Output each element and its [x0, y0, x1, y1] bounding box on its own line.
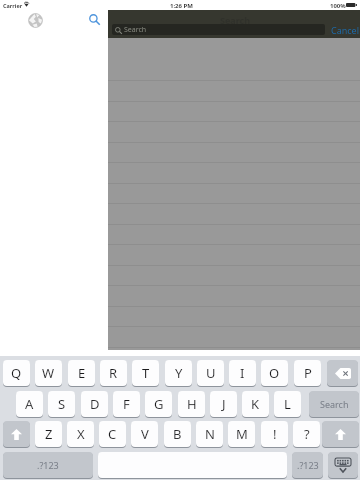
staticText: Search [320, 398, 349, 410]
staticText: W [42, 364, 55, 382]
button[interactable]: N [196, 421, 223, 447]
staticText: S [58, 395, 66, 413]
button[interactable]: U [197, 360, 224, 386]
staticText: C [108, 425, 117, 443]
staticText: Z [45, 425, 53, 443]
staticText: ! [273, 425, 277, 443]
button[interactable]: Hide keyboard [328, 452, 358, 478]
button[interactable]: Search [112, 24, 325, 35]
staticText: D [90, 395, 100, 413]
button[interactable]: B [164, 421, 191, 447]
button[interactable]: R [100, 360, 127, 386]
staticText: V [141, 425, 149, 443]
button[interactable]: I [229, 360, 256, 386]
staticText: P [304, 364, 312, 382]
staticText: K [251, 395, 260, 413]
button[interactable]: T [132, 360, 159, 386]
button[interactable]: H [178, 391, 205, 417]
staticText: J [222, 395, 226, 413]
staticText: E [78, 364, 86, 382]
staticText: .?123 [297, 459, 319, 471]
staticText: .?123 [37, 459, 59, 471]
button[interactable]: M [228, 421, 255, 447]
button[interactable]: Numbers [3, 452, 93, 478]
staticText: U [206, 364, 216, 382]
button[interactable]: A [16, 391, 43, 417]
staticText: F [123, 395, 130, 413]
staticText: Y [175, 364, 183, 382]
button[interactable]: Search [89, 14, 100, 25]
button[interactable]: K [242, 391, 269, 417]
button[interactable]: Shift [322, 421, 359, 447]
staticText: A [25, 395, 34, 413]
staticText: I [240, 364, 245, 382]
staticText: Carrier [3, 2, 23, 9]
button[interactable]: X [67, 421, 94, 447]
staticText: ? [304, 425, 310, 443]
button[interactable]: Y [165, 360, 192, 386]
staticText: T [142, 364, 150, 382]
staticText: B [173, 425, 182, 443]
button[interactable]: S [48, 391, 75, 417]
staticText: Search [124, 25, 147, 35]
staticText: H [187, 395, 197, 413]
button[interactable]: Q [3, 360, 30, 386]
button[interactable]: P [294, 360, 321, 386]
button[interactable]: G [145, 391, 172, 417]
staticText: Q [11, 364, 22, 382]
staticText: G [154, 395, 164, 413]
staticText: M [236, 425, 248, 443]
button[interactable]: Backspace [327, 360, 358, 386]
button[interactable]: J [210, 391, 237, 417]
staticText: L [284, 395, 291, 413]
button[interactable]: Search [309, 391, 359, 417]
button[interactable]: L [274, 391, 301, 417]
staticText: O [269, 364, 280, 382]
button[interactable]: ? [293, 421, 320, 447]
button[interactable]: E [68, 360, 95, 386]
staticText: R [109, 364, 118, 382]
button[interactable]: C [99, 421, 126, 447]
staticText: 100% [330, 2, 346, 10]
staticText: 1:26 PM [170, 2, 193, 10]
button[interactable]: Globe [28, 13, 43, 28]
button[interactable]: D [81, 391, 108, 417]
button[interactable]: V [131, 421, 158, 447]
button[interactable]: Z [35, 421, 62, 447]
button[interactable]: ! [261, 421, 288, 447]
button[interactable]: Numbers [292, 452, 323, 478]
staticText: X [77, 425, 85, 443]
staticText: N [205, 425, 215, 443]
button[interactable]: F [113, 391, 140, 417]
button[interactable]: Shift [3, 421, 30, 447]
button[interactable]: Cancel [329, 23, 360, 37]
staticText: Search [220, 14, 251, 26]
button[interactable]: O [261, 360, 288, 386]
button[interactable]: W [35, 360, 62, 386]
staticText: Cancel [331, 24, 360, 36]
